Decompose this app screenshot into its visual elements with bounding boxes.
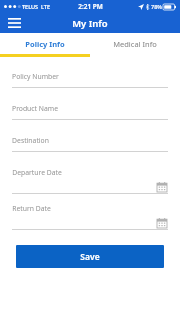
button[interactable]: Medical Info [90, 33, 180, 54]
staticText: Product Name [12, 104, 58, 113]
staticText: Policy Number [12, 72, 59, 81]
other: Pick date [156, 217, 167, 228]
staticText: My Info [72, 17, 108, 30]
staticText: 2:21 PM [78, 2, 103, 11]
other: Pick date [156, 181, 167, 192]
staticText: Departure Date [12, 168, 62, 177]
button[interactable]: Destination [12, 136, 168, 152]
button[interactable]: Product Name [12, 104, 168, 120]
button[interactable]: Policy Info [0, 33, 90, 54]
button[interactable]: Save [16, 245, 164, 268]
staticText: 78% [151, 3, 162, 10]
button[interactable]: Policy Number [12, 72, 168, 88]
staticText: Medical Info [113, 39, 157, 49]
staticText: TELUS LTE [22, 3, 50, 10]
staticText: Save [80, 251, 100, 263]
button[interactable]: Open navigation menu [4, 13, 24, 33]
staticText: Policy Info [25, 39, 65, 49]
button[interactable]: Return Date [12, 204, 168, 230]
staticText: Destination [12, 136, 49, 145]
staticText: Return Date [12, 204, 51, 213]
button[interactable]: Departure Date [12, 168, 168, 194]
